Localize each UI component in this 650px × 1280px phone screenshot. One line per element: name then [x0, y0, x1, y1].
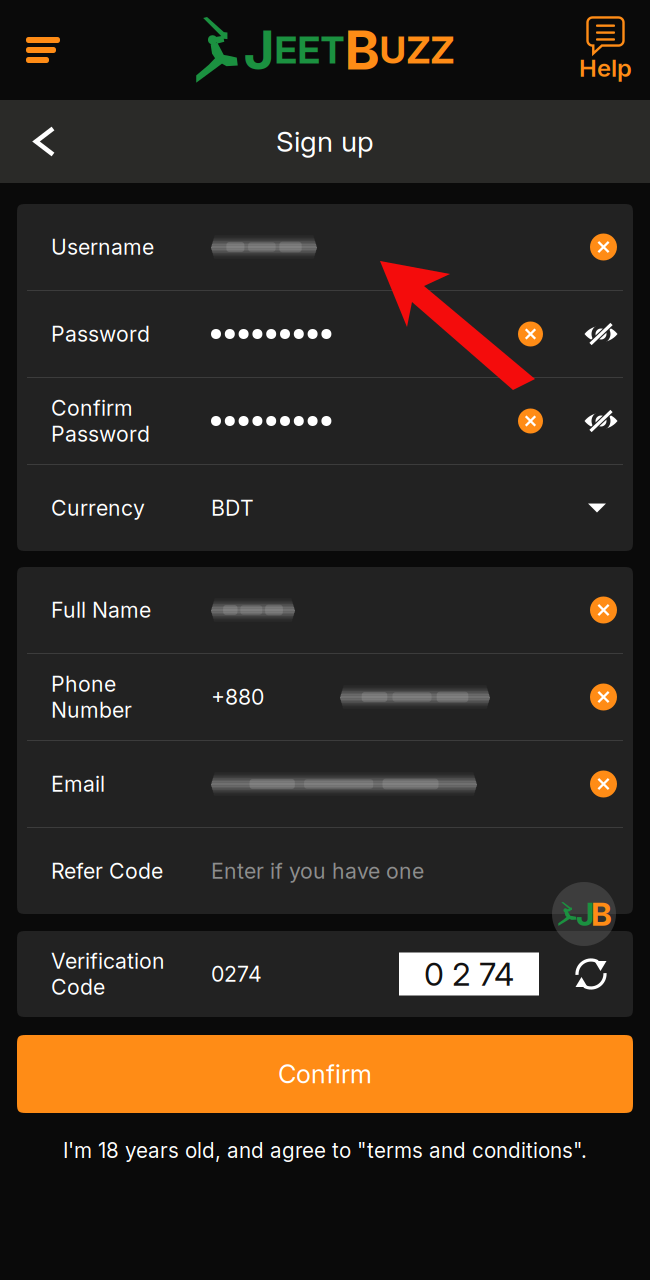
staticText: Email	[51, 771, 105, 797]
staticText: Confirm Password	[51, 395, 150, 447]
staticText: B	[344, 18, 379, 82]
staticText: +880	[211, 684, 264, 710]
staticText: I'm 18 years old, and agree to "terms an…	[63, 1138, 587, 1163]
button[interactable]: Clear	[587, 230, 620, 263]
button[interactable]: JeetBuzz home	[552, 882, 616, 946]
staticText: Confirm	[278, 1059, 372, 1089]
button[interactable]: Confirm	[17, 1035, 633, 1113]
staticText: Verification Code	[51, 948, 165, 1000]
staticText: Enter if you have one	[211, 858, 424, 884]
button[interactable]: Clear	[515, 318, 546, 349]
staticText: J	[576, 895, 594, 933]
staticText: 0274	[211, 961, 262, 987]
staticText: J	[243, 18, 274, 82]
button[interactable]: Clear	[587, 680, 620, 713]
staticText: EET	[274, 27, 344, 73]
staticText: Currency	[51, 495, 145, 521]
button[interactable]: Show password	[582, 406, 620, 436]
staticText: UZZ	[379, 27, 454, 73]
button[interactable]: Refresh captcha	[570, 953, 612, 995]
staticText: Help	[579, 53, 632, 82]
staticText: B	[591, 895, 612, 933]
staticText: 0 2 74	[424, 955, 514, 993]
button[interactable]: Clear	[587, 593, 620, 626]
button[interactable]: Choose currency	[574, 485, 620, 531]
button[interactable]: Menu	[0, 15, 76, 85]
button[interactable]: Clear	[515, 405, 546, 436]
button[interactable]: Clear	[587, 767, 620, 800]
staticText: Password	[51, 321, 150, 347]
button[interactable]: Show password	[582, 319, 620, 349]
staticText: BDT	[211, 495, 254, 521]
staticText: Phone Number	[51, 671, 132, 723]
staticText: Refer Code	[51, 858, 163, 884]
staticText: Username	[51, 234, 154, 260]
button[interactable]: Help	[569, 8, 650, 91]
staticText: Sign up	[276, 125, 374, 158]
button[interactable]: Back	[0, 102, 75, 180]
staticText: Full Name	[51, 597, 151, 623]
